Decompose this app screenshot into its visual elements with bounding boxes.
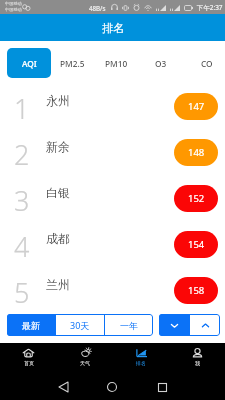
staticText: 3 bbox=[14, 182, 30, 219]
button[interactable]: Recents bbox=[150, 375, 174, 399]
staticText: AQI bbox=[22, 58, 37, 69]
staticText: 新余 bbox=[46, 139, 70, 154]
staticText: 1 bbox=[14, 90, 30, 127]
button[interactable]: 3 bbox=[0, 177, 225, 223]
staticText: 首页 bbox=[24, 360, 34, 366]
staticText: 30天 bbox=[70, 319, 90, 331]
staticText: 5 bbox=[14, 274, 30, 311]
button[interactable]: AQI bbox=[7, 48, 51, 78]
staticText: 148 bbox=[188, 146, 205, 159]
staticText: 152 bbox=[188, 192, 205, 205]
staticText: 兰州 bbox=[46, 277, 70, 292]
button[interactable]: 2 bbox=[0, 131, 225, 177]
staticText: 排名 bbox=[136, 360, 146, 366]
button[interactable]: 我 bbox=[169, 343, 225, 370]
button[interactable]: 首页 bbox=[0, 343, 57, 370]
staticText: 下午2:37 bbox=[197, 3, 223, 12]
staticText: 白银 bbox=[46, 185, 70, 200]
staticText: 48B/s bbox=[89, 4, 106, 12]
staticText: 一年 bbox=[120, 320, 138, 331]
staticText: 4 bbox=[14, 228, 30, 265]
button[interactable]: CO bbox=[185, 48, 225, 78]
staticText: PM10 bbox=[105, 58, 128, 69]
button[interactable]: 天气 bbox=[57, 343, 113, 370]
staticText: 中国移动 bbox=[5, 1, 22, 6]
button[interactable]: Scroll down bbox=[159, 314, 189, 336]
staticText: 排名 bbox=[102, 21, 124, 35]
staticText: 147 bbox=[188, 100, 205, 113]
button[interactable]: PM2.5 bbox=[50, 48, 94, 78]
staticText: PM2.5 bbox=[60, 58, 85, 69]
staticText: 154 bbox=[188, 238, 205, 251]
button[interactable]: 4 bbox=[0, 223, 225, 269]
button[interactable]: O3 bbox=[139, 48, 183, 78]
staticText: 天气 bbox=[80, 360, 90, 366]
button[interactable]: Scroll up bbox=[190, 314, 220, 336]
button[interactable]: 一年 bbox=[105, 314, 153, 336]
staticText: 成都 bbox=[46, 231, 70, 246]
staticText: 我 bbox=[195, 360, 200, 366]
button[interactable]: 30天 bbox=[56, 314, 104, 336]
staticText: 158 bbox=[188, 284, 205, 297]
staticText: CO bbox=[201, 58, 213, 69]
button[interactable]: 最新 bbox=[7, 314, 55, 336]
staticText: 中国移动 bbox=[5, 7, 22, 12]
button[interactable]: Home bbox=[100, 375, 124, 399]
staticText: 最新 bbox=[22, 320, 40, 331]
button[interactable]: 1 bbox=[0, 85, 225, 131]
staticText: O3 bbox=[155, 58, 167, 69]
button[interactable]: Back bbox=[51, 375, 75, 399]
staticText: 2 bbox=[14, 136, 30, 173]
button[interactable]: PM10 bbox=[94, 48, 138, 78]
button[interactable]: 排名 bbox=[113, 343, 169, 370]
button[interactable]: 5 bbox=[0, 269, 225, 312]
staticText: 永州 bbox=[46, 93, 70, 108]
